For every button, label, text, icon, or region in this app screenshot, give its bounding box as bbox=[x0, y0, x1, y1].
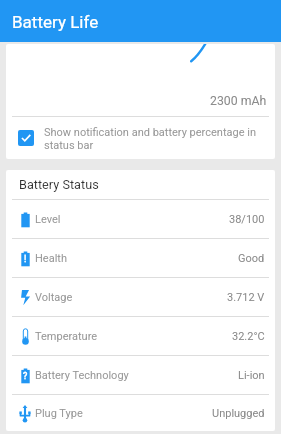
staticText: Li-ion bbox=[238, 369, 265, 382]
staticText: Battery Technology bbox=[35, 369, 129, 382]
button[interactable]: Level bbox=[6, 200, 275, 238]
staticText: 38/100 bbox=[229, 213, 265, 226]
staticText: Show notification and battery percentage… bbox=[44, 126, 261, 151]
staticText: Health bbox=[35, 252, 67, 265]
staticText: 3.712 V bbox=[227, 291, 265, 304]
staticText: 32.2°C bbox=[232, 330, 265, 343]
button[interactable]: Show notification and battery percentage… bbox=[6, 117, 275, 159]
button[interactable]: ? bbox=[6, 356, 275, 394]
staticText: Unplugged bbox=[212, 407, 265, 420]
staticText: Battery Status bbox=[19, 177, 99, 192]
staticText: Good bbox=[238, 252, 265, 265]
staticText: Level bbox=[35, 213, 61, 226]
staticText: Battery Life bbox=[12, 12, 99, 32]
staticText: Plug Type bbox=[35, 407, 83, 420]
button[interactable]: Voltage bbox=[6, 278, 275, 316]
button[interactable]: Temperature bbox=[6, 317, 275, 355]
button[interactable]: Plug Type bbox=[6, 395, 275, 431]
staticText: 2300 mAh bbox=[210, 94, 267, 108]
staticText: Voltage bbox=[35, 291, 73, 304]
button[interactable]: ! bbox=[6, 239, 275, 277]
staticText: Temperature bbox=[35, 330, 98, 343]
staticText: ? bbox=[23, 371, 28, 382]
staticText: ! bbox=[24, 254, 27, 265]
